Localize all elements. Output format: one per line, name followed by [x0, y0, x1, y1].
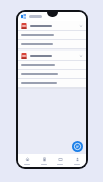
button[interactable]: Home	[19, 154, 35, 167]
other: Expand	[79, 54, 83, 58]
button[interactable]: PDF document	[18, 21, 86, 30]
button[interactable]	[29, 15, 42, 18]
button[interactable]	[18, 70, 86, 79]
button[interactable]: PDF document	[18, 51, 86, 60]
button[interactable]	[18, 40, 86, 49]
other: PDF document	[21, 53, 27, 59]
button[interactable]	[18, 31, 86, 40]
button[interactable]: Profile	[69, 154, 85, 167]
other: Expand	[79, 24, 83, 28]
button[interactable]: Tools	[52, 154, 68, 167]
button[interactable]	[18, 79, 86, 88]
button[interactable]: Create	[72, 141, 83, 152]
button[interactable]: Files	[36, 154, 52, 167]
other: App logo	[21, 14, 26, 19]
button[interactable]	[18, 61, 86, 70]
other: PDF document	[21, 23, 27, 29]
